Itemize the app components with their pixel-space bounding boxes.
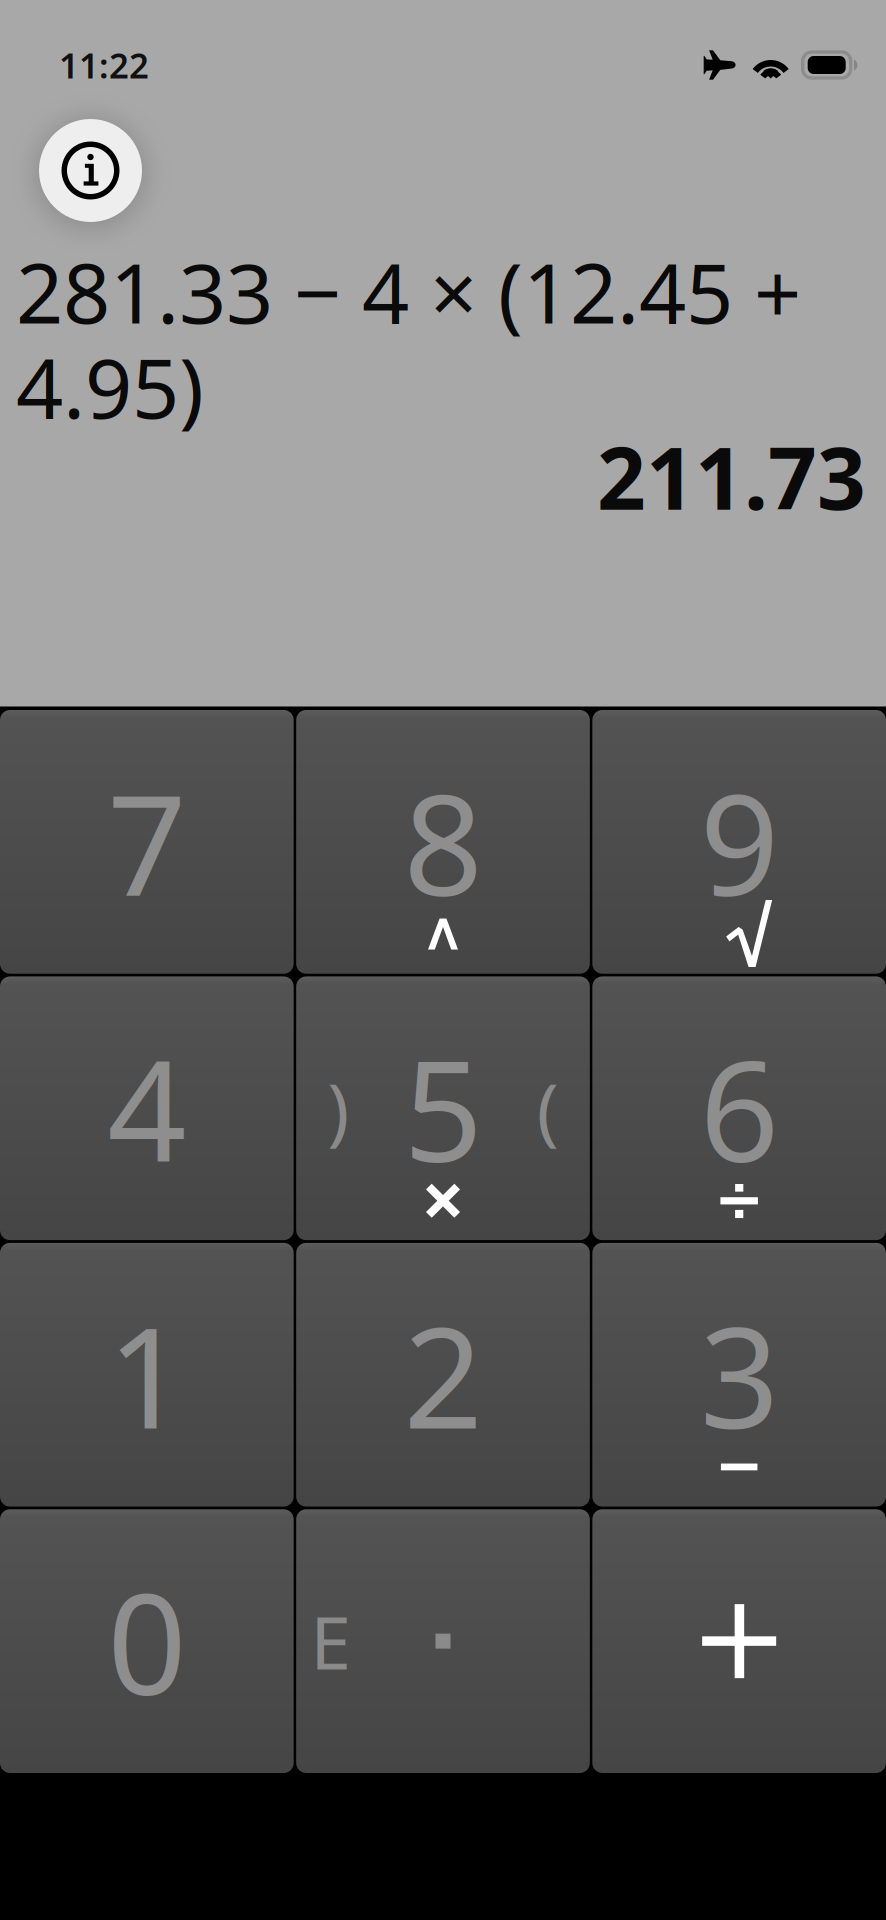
button[interactable]: 6, divide bbox=[592, 976, 886, 1240]
button[interactable]: plus bbox=[592, 1509, 886, 1773]
button[interactable]: decimal point bbox=[296, 1509, 590, 1773]
staticText: 9 bbox=[700, 750, 779, 934]
staticText: 7 bbox=[107, 750, 186, 934]
staticText: 0 bbox=[107, 1549, 186, 1733]
button[interactable]: 5, multiply bbox=[296, 976, 590, 1240]
button[interactable]: 3, minus bbox=[592, 1243, 886, 1506]
staticText: 211.73 bbox=[597, 420, 866, 533]
staticText: 4 bbox=[107, 1016, 186, 1200]
staticText: 1 bbox=[107, 1283, 186, 1467]
button[interactable]: 4 bbox=[0, 976, 294, 1240]
staticText: ( bbox=[537, 1060, 559, 1157]
button[interactable]: 2 bbox=[296, 1243, 590, 1506]
button[interactable]: Info bbox=[39, 119, 142, 222]
button[interactable]: 1 bbox=[0, 1243, 294, 1506]
button[interactable]: 8, power bbox=[296, 710, 590, 974]
staticText: E bbox=[310, 1592, 351, 1690]
staticText: 4.95) bbox=[16, 332, 204, 441]
staticText: 11:22 bbox=[59, 42, 149, 88]
staticText: ) bbox=[327, 1060, 349, 1157]
button[interactable]: 0 bbox=[0, 1509, 294, 1773]
staticText: 2 bbox=[403, 1283, 482, 1467]
staticText: 6 bbox=[700, 1016, 779, 1200]
staticText: 3 bbox=[700, 1283, 779, 1467]
staticText: 8 bbox=[403, 750, 482, 934]
button[interactable]: 9, square root bbox=[592, 710, 886, 974]
staticText: 5 bbox=[403, 1016, 482, 1200]
button[interactable]: 7 bbox=[0, 710, 294, 974]
staticText: 281.33 − 4 × (12.45 + bbox=[16, 237, 801, 346]
